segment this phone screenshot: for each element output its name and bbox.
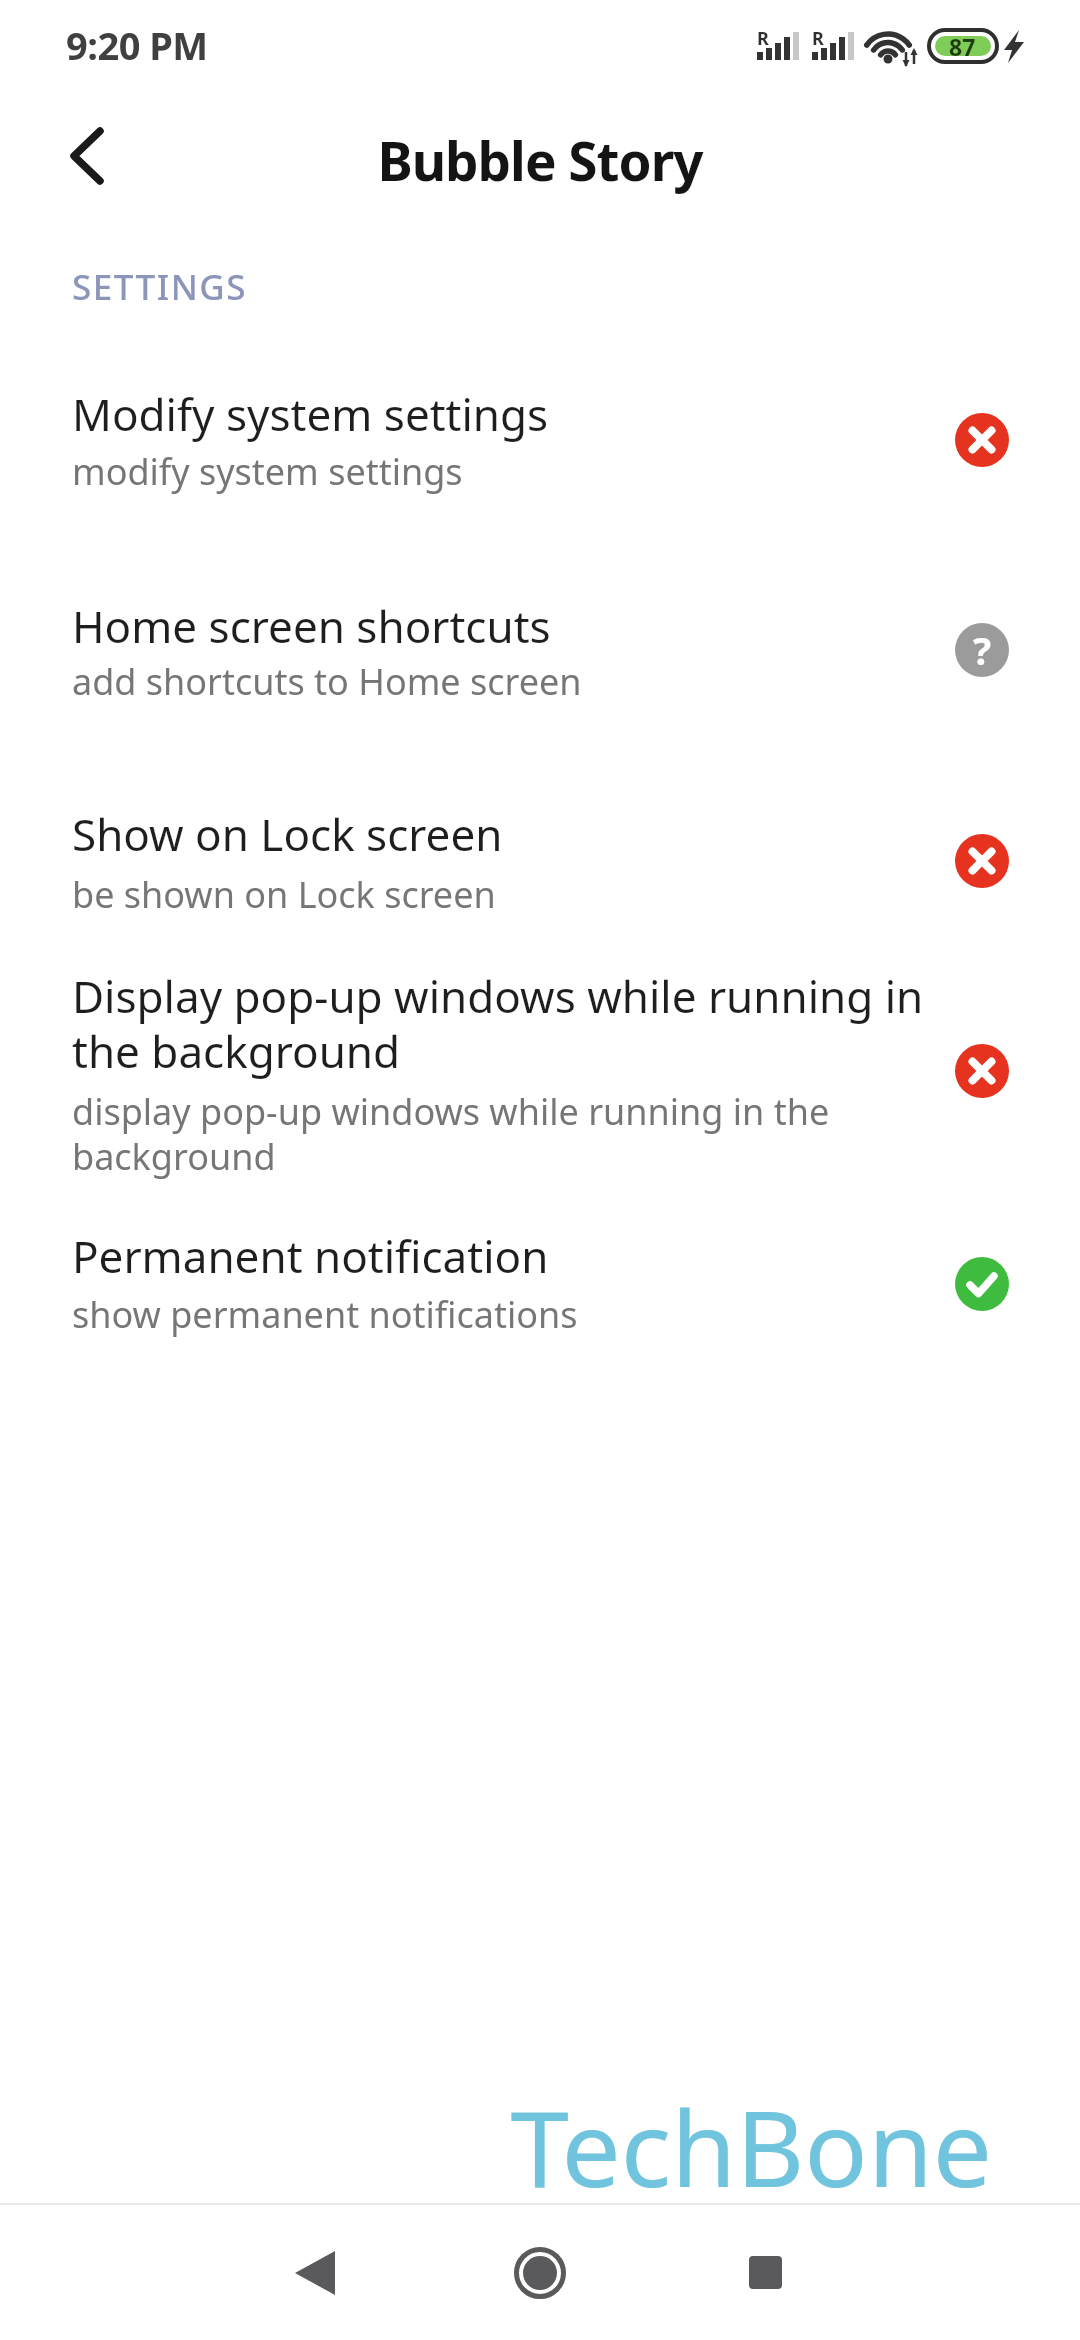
- button[interactable]: [690, 2205, 840, 2340]
- staticText: add shortcuts to Home screen: [72, 657, 582, 706]
- staticText: TechBone: [0, 2075, 992, 2218]
- staticText: 9:20 PM: [66, 19, 208, 71]
- button[interactable]: Display pop-up windows while running in …: [72, 966, 924, 1081]
- staticText: be shown on Lock screen: [72, 870, 496, 919]
- button[interactable]: [955, 834, 1009, 888]
- button[interactable]: ?: [955, 623, 1009, 677]
- button[interactable]: [240, 2205, 390, 2340]
- staticText: ?: [973, 624, 992, 676]
- staticText: modify system settings: [72, 447, 463, 496]
- staticText: display pop-up windows while running in …: [72, 1087, 830, 1180]
- staticText: R: [757, 26, 769, 51]
- staticText: show permanent notifications: [72, 1290, 578, 1339]
- button[interactable]: [50, 126, 130, 196]
- staticText: Bubble Story: [0, 124, 1080, 196]
- staticText: R: [812, 26, 824, 51]
- staticText: SETTINGS: [72, 263, 248, 311]
- button[interactable]: [955, 1257, 1009, 1311]
- button[interactable]: Permanent notification: [72, 1226, 549, 1286]
- button[interactable]: Modify system settings: [72, 384, 549, 444]
- staticText: 87: [949, 31, 976, 62]
- button[interactable]: Home screen shortcuts: [72, 596, 551, 656]
- button[interactable]: [955, 1044, 1009, 1098]
- button[interactable]: [955, 413, 1009, 467]
- button[interactable]: Show on Lock screen: [72, 804, 503, 864]
- button[interactable]: [465, 2205, 615, 2340]
